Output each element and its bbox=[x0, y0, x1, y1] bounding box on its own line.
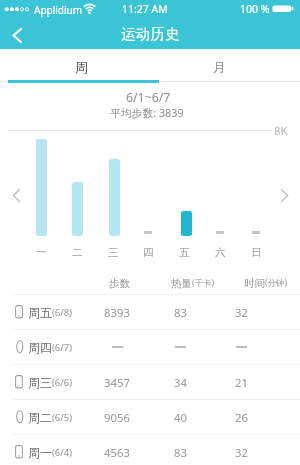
staticText: (6/8) bbox=[52, 306, 73, 319]
staticText: 周一 bbox=[28, 445, 52, 460]
staticText: 周三 bbox=[28, 375, 52, 390]
staticText: 26 bbox=[235, 410, 248, 425]
button[interactable]: 周 bbox=[12, 50, 150, 83]
staticText: 四 bbox=[143, 246, 154, 258]
staticText: 周二 bbox=[28, 410, 52, 425]
button[interactable] bbox=[0, 329, 300, 364]
button[interactable] bbox=[0, 399, 300, 434]
staticText: 100 % bbox=[240, 2, 270, 16]
staticText: (6/7) bbox=[52, 341, 73, 354]
staticText: 21 bbox=[235, 375, 248, 390]
staticText: 3457 bbox=[104, 375, 130, 390]
staticText: 9056 bbox=[104, 410, 130, 425]
staticText: 时间 bbox=[244, 277, 265, 290]
staticText: 日 bbox=[251, 246, 262, 258]
staticText: 34 bbox=[174, 375, 187, 390]
staticText: 周四 bbox=[28, 340, 52, 355]
staticText: (6/6) bbox=[52, 376, 73, 389]
staticText: 月 bbox=[213, 59, 226, 75]
staticText: 32 bbox=[235, 445, 248, 460]
staticText: 周五 bbox=[28, 305, 52, 320]
staticText: 6/1~6/7 bbox=[126, 89, 171, 104]
staticText: 32 bbox=[235, 305, 248, 320]
button[interactable] bbox=[2, 22, 32, 48]
staticText: (6/5) bbox=[52, 411, 73, 424]
staticText: 8393 bbox=[104, 305, 130, 320]
staticText: 8K bbox=[274, 123, 288, 137]
staticText: 六 bbox=[215, 246, 226, 258]
staticText: 五 bbox=[179, 246, 190, 258]
button[interactable] bbox=[0, 294, 300, 329]
staticText: 83 bbox=[174, 445, 187, 460]
staticText: Applidium bbox=[34, 3, 83, 17]
staticText: 二 bbox=[72, 246, 83, 258]
staticText: 一 bbox=[36, 246, 47, 258]
staticText: 平均步数: 3839 bbox=[110, 105, 184, 119]
staticText: 40 bbox=[174, 410, 187, 425]
staticText: 83 bbox=[174, 305, 187, 320]
staticText: 三 bbox=[108, 246, 119, 258]
staticText: 11:27 AM bbox=[122, 2, 168, 16]
button[interactable] bbox=[4, 180, 28, 210]
button[interactable] bbox=[272, 180, 296, 210]
staticText: (千卡) bbox=[192, 277, 215, 289]
button[interactable] bbox=[0, 364, 300, 399]
button[interactable] bbox=[0, 434, 300, 465]
staticText: 步数 bbox=[109, 277, 130, 290]
staticText: 运动历史 bbox=[121, 25, 180, 44]
staticText: (分钟) bbox=[265, 277, 288, 289]
staticText: 4563 bbox=[104, 445, 130, 460]
staticText: 周 bbox=[75, 59, 88, 75]
button[interactable]: 月 bbox=[150, 50, 288, 83]
staticText: (6/4) bbox=[52, 446, 73, 459]
staticText: 热量 bbox=[171, 277, 192, 290]
